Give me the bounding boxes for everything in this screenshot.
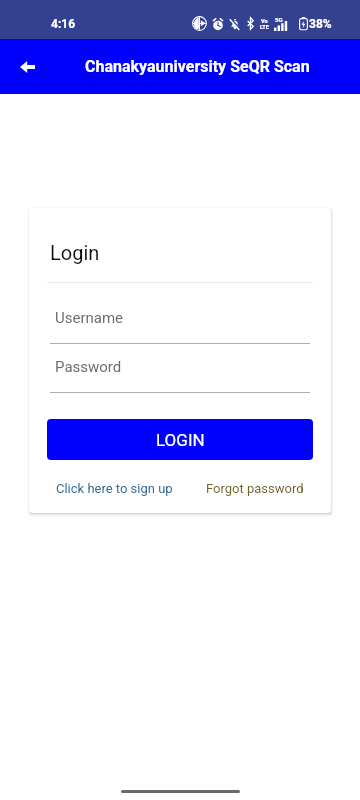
staticText: Username	[55, 309, 124, 327]
staticText: Login	[50, 241, 100, 264]
staticText: 38%	[309, 17, 332, 31]
button[interactable]: Forgot password	[201, 474, 309, 503]
button[interactable]: Back	[9, 49, 45, 85]
staticText: Chanakyauniversity SeQR Scan	[85, 57, 310, 76]
button[interactable]: Username	[50, 302, 310, 344]
staticText: 4:16	[51, 17, 76, 31]
staticText: Password	[55, 358, 122, 376]
button[interactable]: Click here to sign up	[51, 474, 178, 503]
staticText: 5G	[275, 16, 283, 23]
button[interactable]: LOGIN	[47, 419, 313, 460]
staticText: Forgot password	[206, 481, 304, 496]
staticText: Click here to sign up	[56, 481, 173, 496]
button[interactable]: Password	[50, 351, 310, 393]
staticText: Vo	[261, 18, 268, 24]
staticText: LTE	[260, 24, 269, 30]
staticText: LOGIN	[156, 430, 205, 450]
